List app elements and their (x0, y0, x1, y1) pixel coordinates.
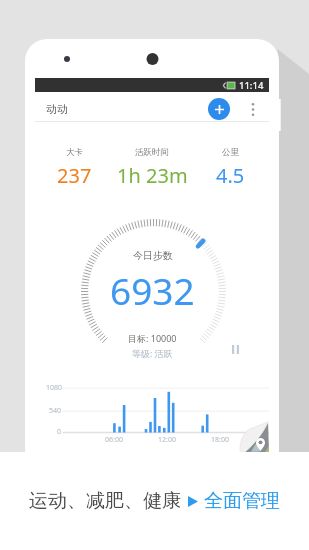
staticText: 今日步数 (133, 249, 173, 262)
staticText: 大卡 (66, 147, 83, 158)
staticText: 1080 (46, 383, 63, 393)
staticText: 18:00 (211, 435, 229, 445)
staticText: 06:00 (105, 435, 123, 445)
button[interactable]: 公里 (191, 147, 269, 189)
staticText: 4.5 (216, 162, 245, 189)
button[interactable]: 大卡 (35, 147, 113, 189)
staticText: 11:14 (239, 79, 264, 92)
button[interactable]: More options (245, 100, 261, 118)
button[interactable]: Hourly step chart (35, 372, 269, 448)
staticText: 公里 (222, 147, 239, 158)
staticText: 1h 23m (117, 162, 188, 189)
button[interactable]: Pause (228, 342, 242, 356)
button[interactable]: 活跃时间 (113, 147, 191, 189)
staticText: 活跃时间 (135, 147, 169, 158)
button[interactable]: Add activity (208, 98, 230, 120)
staticText: 运动、减肥、健康 (29, 489, 181, 513)
button[interactable]: 运动、减肥、健康 (29, 489, 280, 513)
button[interactable]: Map (237, 417, 269, 452)
staticText: 全面管理 (204, 489, 280, 513)
staticText: 等级: 活跃 (132, 347, 173, 359)
staticText: 动动 (46, 102, 68, 116)
staticText: 540 (49, 406, 62, 416)
button[interactable]: 动动 (46, 92, 68, 122)
button[interactable]: Today steps dial (77, 215, 230, 368)
staticText: 目标: 10000 (128, 332, 177, 344)
staticText: 237 (57, 162, 92, 189)
staticText: 6932 (110, 265, 195, 315)
staticText: 12:00 (158, 435, 176, 445)
staticText: 0 (57, 427, 62, 437)
